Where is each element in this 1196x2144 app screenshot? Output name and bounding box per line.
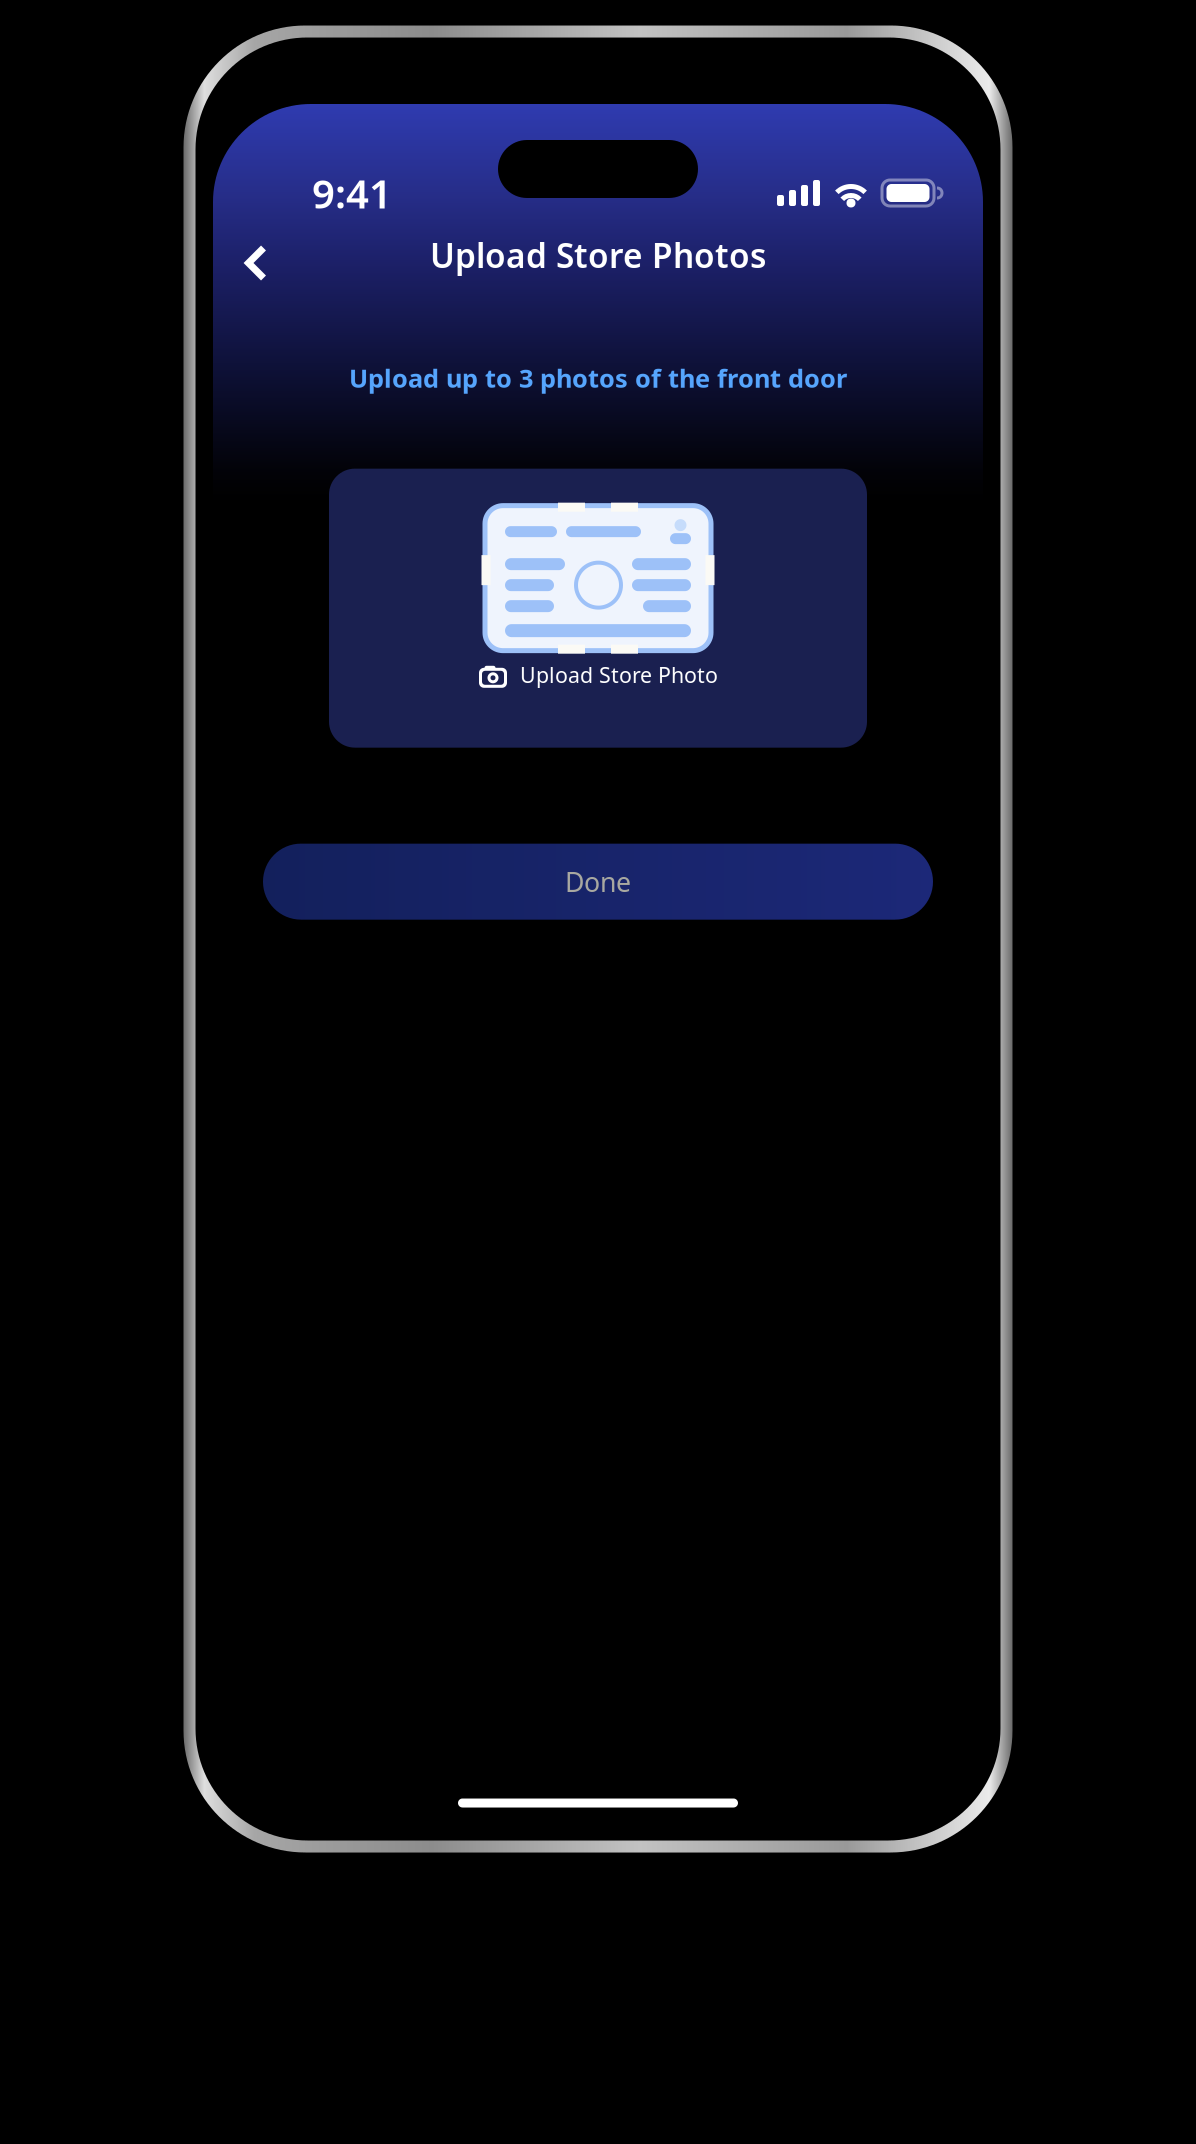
button[interactable]: Upload Store Photo	[329, 469, 867, 748]
staticText: Upload Store Photos	[430, 233, 766, 277]
button[interactable]: Back	[220, 219, 292, 291]
staticText: Done	[565, 864, 631, 899]
staticText: 9:41	[312, 166, 392, 219]
button[interactable]: Done	[263, 844, 933, 920]
staticText: Upload up to 3 photos of the front door	[349, 361, 847, 395]
staticText: Upload Store Photo	[520, 661, 718, 689]
